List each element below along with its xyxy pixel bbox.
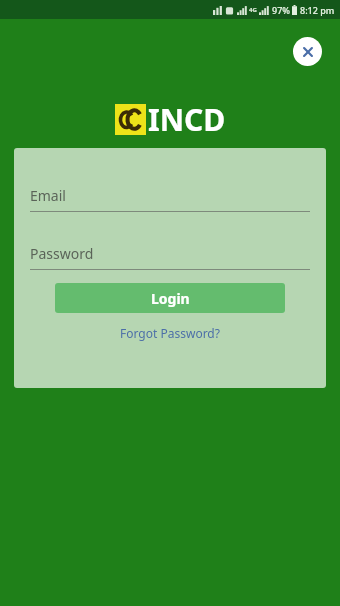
button[interactable]: Email — [30, 186, 310, 212]
button[interactable]: Forgot Password? — [114, 323, 226, 343]
button[interactable]: Close — [293, 37, 322, 66]
staticText: Password — [30, 244, 94, 263]
staticText: 8:12 pm — [300, 4, 335, 16]
staticText: Forgot Password? — [120, 325, 220, 341]
staticText: INCD — [148, 99, 226, 140]
staticText: Email — [30, 186, 66, 205]
button[interactable]: Password — [30, 244, 310, 270]
staticText: 97% — [272, 4, 290, 16]
button[interactable]: Login — [55, 283, 285, 313]
staticText: 4G — [249, 6, 257, 14]
staticText: Login — [151, 289, 190, 308]
